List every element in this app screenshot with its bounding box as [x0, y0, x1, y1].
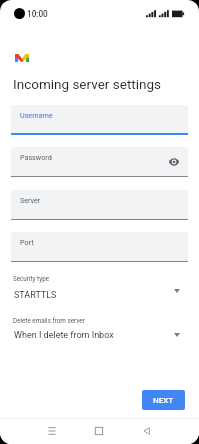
button[interactable]: Recent apps	[44, 423, 60, 439]
button[interactable]: NEXT	[142, 390, 185, 410]
staticText: NEXT	[153, 396, 174, 405]
staticText: STARTTLS	[14, 290, 57, 301]
button[interactable]: Back	[139, 423, 155, 439]
button[interactable]: Security type	[13, 275, 188, 305]
staticText: Delete emails from server	[13, 317, 85, 324]
staticText: Port	[20, 238, 34, 246]
other: Show password	[168, 156, 180, 168]
staticText: When I delete from Inbox	[14, 330, 114, 341]
staticText: Security type	[13, 275, 50, 282]
staticText: Username	[20, 111, 53, 119]
button[interactable]: Username	[11, 105, 188, 135]
button[interactable]: Server	[11, 190, 188, 220]
staticText: Password	[20, 153, 52, 161]
button[interactable]: Home	[91, 423, 107, 439]
button[interactable]: Delete emails from server	[13, 317, 188, 347]
button[interactable]: Port	[11, 232, 188, 262]
button[interactable]: Password	[11, 147, 188, 177]
staticText: Server	[20, 196, 41, 204]
staticText: 10:00	[27, 9, 48, 19]
staticText: Incoming server settings	[13, 76, 161, 92]
